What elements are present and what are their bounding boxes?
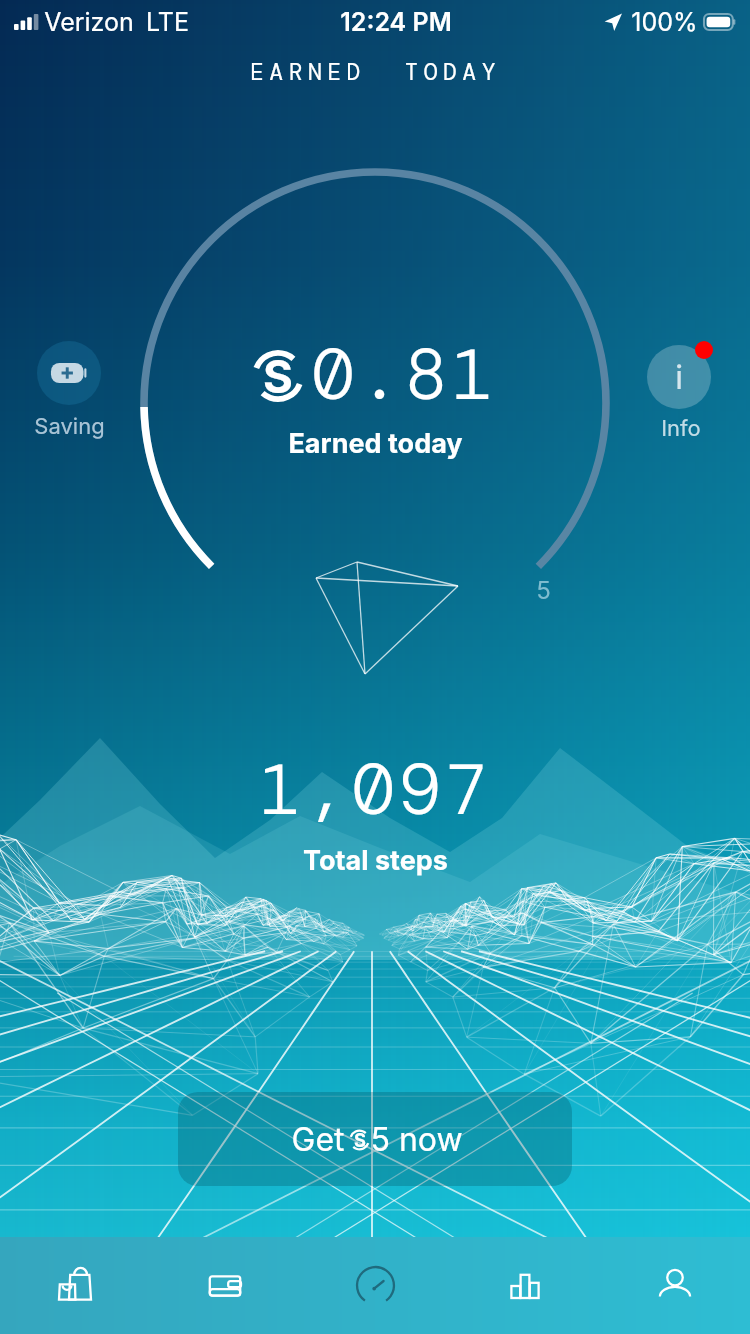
staticText: Get [287, 1120, 349, 1159]
button[interactable]: Profile [600, 1237, 750, 1334]
staticText: 5 [536, 576, 551, 605]
staticText: 0.81 [312, 330, 498, 421]
button[interactable]: Shop [0, 1237, 150, 1334]
staticText: 5 now [370, 1120, 463, 1159]
staticText: Earned today [288, 427, 463, 460]
staticText: Verizon [44, 7, 134, 37]
staticText: 1,097 [259, 745, 492, 836]
staticText: EARNED TODAY [250, 57, 501, 87]
staticText: i [675, 358, 683, 397]
staticText: S [354, 1129, 366, 1151]
button[interactable]: Info [632, 341, 730, 442]
staticText: Total steps [303, 844, 448, 877]
staticText: Saving [34, 413, 105, 440]
staticText: 12:24 PM [340, 7, 452, 37]
button[interactable]: Saving [20, 341, 118, 440]
button[interactable]: Wallet [150, 1237, 300, 1334]
button[interactable]: Dashboard [300, 1237, 450, 1334]
button[interactable]: Stats [450, 1237, 600, 1334]
staticText: Info [661, 415, 701, 442]
staticText: S [263, 349, 293, 404]
staticText: 100% [631, 7, 698, 37]
button[interactable]: Get [178, 1092, 572, 1186]
staticText: LTE [146, 7, 189, 37]
